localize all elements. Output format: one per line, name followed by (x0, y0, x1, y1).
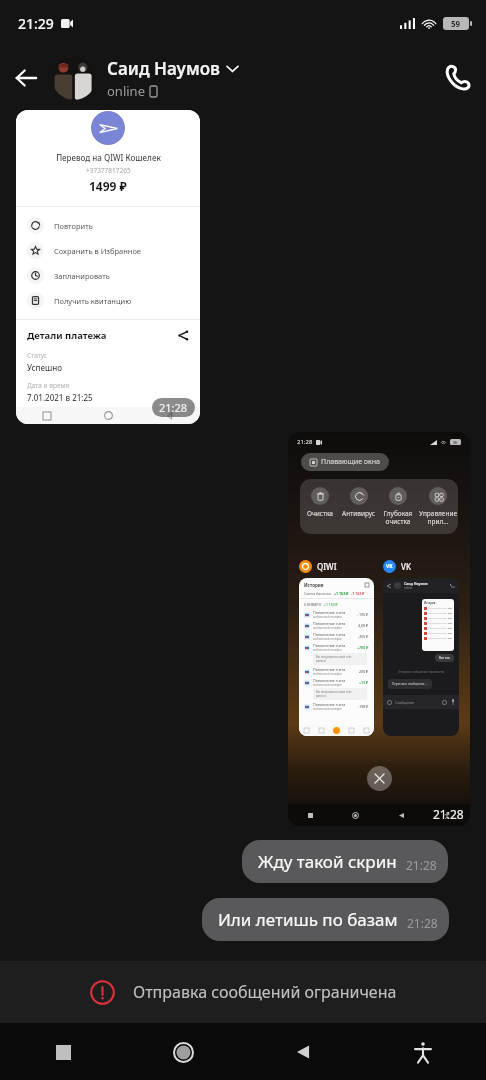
staticText: мобильный телефон (313, 615, 343, 619)
staticText: Запланировать (54, 271, 110, 281)
staticText: мобильный телефон (313, 637, 343, 641)
staticText: 21:28 (159, 400, 188, 415)
button[interactable]: Глубокая очистка (378, 487, 418, 526)
staticText: 59 (451, 18, 461, 29)
button[interactable]: Очистка (300, 487, 339, 518)
staticText: Плавающие окна (321, 457, 380, 467)
staticText: Антивирус (342, 509, 375, 518)
staticText: 7.01.2021 в 21:25 (27, 392, 93, 403)
staticText: +37377817265 (86, 166, 131, 175)
staticText: online (107, 82, 145, 100)
staticText: Или летишь по базам (218, 908, 398, 931)
button[interactable]: VK (383, 560, 459, 736)
staticText: Повторить (54, 221, 93, 231)
staticText: Вот так (439, 656, 450, 660)
staticText: +1 152 ₽ (334, 591, 349, 596)
button[interactable]: Accessibility (399, 1028, 447, 1076)
staticText: VK (386, 563, 393, 570)
staticText: 21:28 (407, 915, 438, 931)
button[interactable]: 21:28 (288, 432, 470, 826)
staticText: 6 ЯНВАРЯ (304, 602, 321, 607)
staticText: Детали платежа (27, 329, 107, 342)
staticText: Успешно (27, 362, 63, 373)
staticText: Вы получили на свой счёт деньги (316, 655, 352, 663)
staticText: мобильный телефон (313, 672, 343, 676)
staticText: 1499 ₽ (89, 178, 127, 194)
button[interactable]: Управление прил… (418, 487, 458, 526)
staticText: Статус (27, 351, 48, 360)
staticText: online (404, 586, 413, 590)
staticText: Пополнение счета (313, 621, 346, 626)
staticText: Пополнение счета (313, 643, 346, 648)
staticText: Переслать сообщение … (392, 682, 428, 686)
staticText: 200 ₽ (359, 669, 369, 674)
button[interactable]: Получить квитанцию (16, 288, 200, 313)
staticText: Вы получили на свой счёт деньги (316, 690, 352, 698)
staticText: -205 ₽ (358, 634, 369, 639)
staticText: Пополнение счета (313, 702, 346, 707)
staticText: 21:28 (433, 806, 464, 822)
button[interactable]: Повторить (16, 213, 200, 238)
staticText: Пополнение счета (313, 678, 346, 683)
button[interactable]: Перевод на QIWI Кошелек (16, 110, 200, 424)
staticText: мобильный телефон (313, 626, 343, 630)
staticText: QIWI (317, 561, 337, 572)
staticText: Получить квитанцию (54, 296, 132, 306)
staticText: 4,00 ₽ (358, 623, 369, 628)
staticText: VK (401, 561, 411, 572)
staticText: 21:28 (406, 857, 437, 873)
staticText: мобильный телефон (313, 707, 343, 711)
staticText: История (424, 601, 436, 605)
staticText: -198 ₽ (358, 704, 369, 709)
staticText: Отправка сообщений ограничена (133, 981, 397, 1003)
staticText: Отправка сообщений ограничена (398, 670, 445, 674)
staticText: Дата и время (27, 381, 70, 390)
button[interactable]: Жду такой скрин (242, 840, 448, 883)
staticText: 21:29 (18, 14, 54, 33)
staticText: Пополнение счета (313, 610, 346, 615)
button[interactable]: Антивирус (339, 487, 378, 518)
staticText: Пополнение счета (313, 667, 346, 672)
button[interactable]: Отправка сообщений ограничена (0, 961, 486, 1023)
staticText: Глубокая очистка (378, 509, 418, 526)
button[interactable]: Home (159, 1028, 207, 1076)
button[interactable]: Close all (367, 766, 392, 791)
staticText: Саид Наумов (404, 581, 428, 586)
button[interactable]: Плавающие окна (301, 453, 389, 471)
staticText: Смена баланса: (304, 591, 332, 596)
staticText: -1 162 ₽ (351, 591, 365, 596)
staticText: +700 ₽ (357, 645, 369, 650)
button[interactable]: Call (430, 50, 486, 106)
staticText: 36 (453, 440, 458, 445)
staticText: Перевод на QIWI Кошелек (56, 152, 161, 163)
staticText: +1 152 ₽ (324, 602, 338, 607)
button[interactable]: QIWI (299, 560, 374, 736)
staticText: Жду такой скрин (258, 850, 397, 873)
staticText: Очистка (307, 509, 333, 518)
staticText: История (304, 582, 324, 588)
staticText: Сохранить в Избранное (54, 246, 141, 256)
button[interactable]: Back (0, 52, 52, 104)
button[interactable] (52, 56, 96, 100)
staticText: Пополнение счета (313, 632, 346, 637)
button[interactable]: Сохранить в Избранное (16, 238, 200, 263)
button[interactable]: Запланировать (16, 263, 200, 288)
button[interactable]: Или летишь по базам (202, 898, 449, 941)
button[interactable]: Back (279, 1028, 327, 1076)
staticText: мобильный телефон (313, 683, 343, 687)
button[interactable]: Recents (39, 1028, 87, 1076)
staticText: мобильный телефон (313, 648, 343, 652)
staticText: 21:28 (297, 438, 313, 446)
staticText: - 105 ₽ (357, 612, 369, 617)
staticText: +13 ₽ (359, 680, 369, 685)
staticText: Саид Наумов (107, 57, 221, 80)
staticText: Управление прил… (418, 509, 458, 526)
staticText: Сообщение (395, 700, 415, 705)
